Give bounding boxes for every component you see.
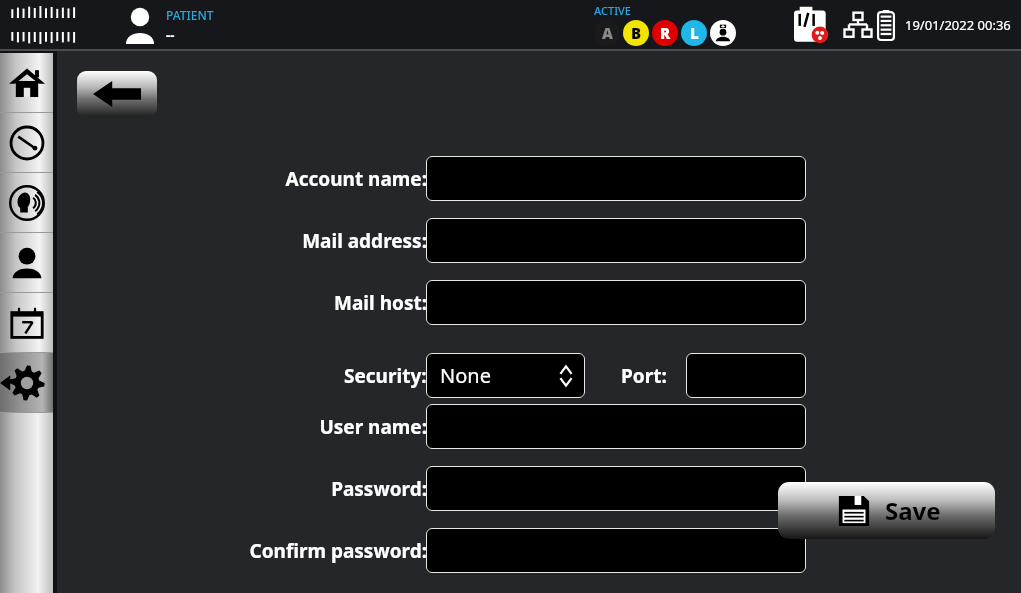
button[interactable]: B: [623, 20, 649, 46]
button[interactable]: Save: [778, 482, 995, 539]
staticText: R: [660, 23, 671, 43]
button[interactable]: Settings: [0, 353, 53, 413]
button[interactable]: Password:: [426, 466, 806, 511]
button[interactable]: Home: [0, 53, 53, 113]
button[interactable]: [686, 353, 806, 398]
button[interactable]: Calendar: [0, 293, 53, 353]
staticText: Port:: [621, 363, 667, 389]
staticText: Password:: [331, 476, 427, 502]
button[interactable]: Network: [843, 11, 873, 39]
button[interactable]: Patients: [0, 233, 53, 293]
staticText: Confirm password:: [249, 538, 427, 564]
staticText: --: [166, 26, 175, 44]
staticText: L: [690, 23, 699, 43]
button[interactable]: Measurements: [0, 113, 53, 173]
button[interactable]: Audiometry: [0, 173, 53, 233]
staticText: None: [440, 362, 491, 389]
button[interactable]: Confirm password:: [426, 528, 806, 573]
staticText: Mail host:: [334, 290, 427, 316]
button[interactable]: Mail host:: [426, 280, 806, 325]
staticText: 19/01/2022 00:36: [905, 16, 1011, 34]
button[interactable]: User name:: [426, 404, 806, 449]
button[interactable]: A: [594, 20, 620, 46]
button[interactable]: Nurse: [710, 20, 736, 46]
button[interactable]: Account name:: [426, 156, 806, 201]
staticText: Mail address:: [302, 228, 427, 254]
staticText: User name:: [319, 414, 427, 440]
button[interactable]: Back: [77, 71, 157, 117]
staticText: Save: [885, 494, 941, 527]
button[interactable]: L: [681, 20, 707, 46]
button[interactable]: None: [426, 353, 585, 398]
staticText: A: [602, 23, 613, 43]
staticText: Security:: [344, 363, 427, 389]
staticText: PATIENT: [166, 7, 214, 23]
button[interactable]: R: [652, 20, 678, 46]
button[interactable]: Mail address:: [426, 218, 806, 263]
button[interactable]: Battery: [877, 10, 895, 40]
staticText: Account name:: [285, 166, 427, 192]
staticText: ACTIVE: [594, 3, 631, 18]
staticText: B: [631, 23, 642, 43]
button[interactable]: Samples 1 of 1: [794, 6, 838, 44]
